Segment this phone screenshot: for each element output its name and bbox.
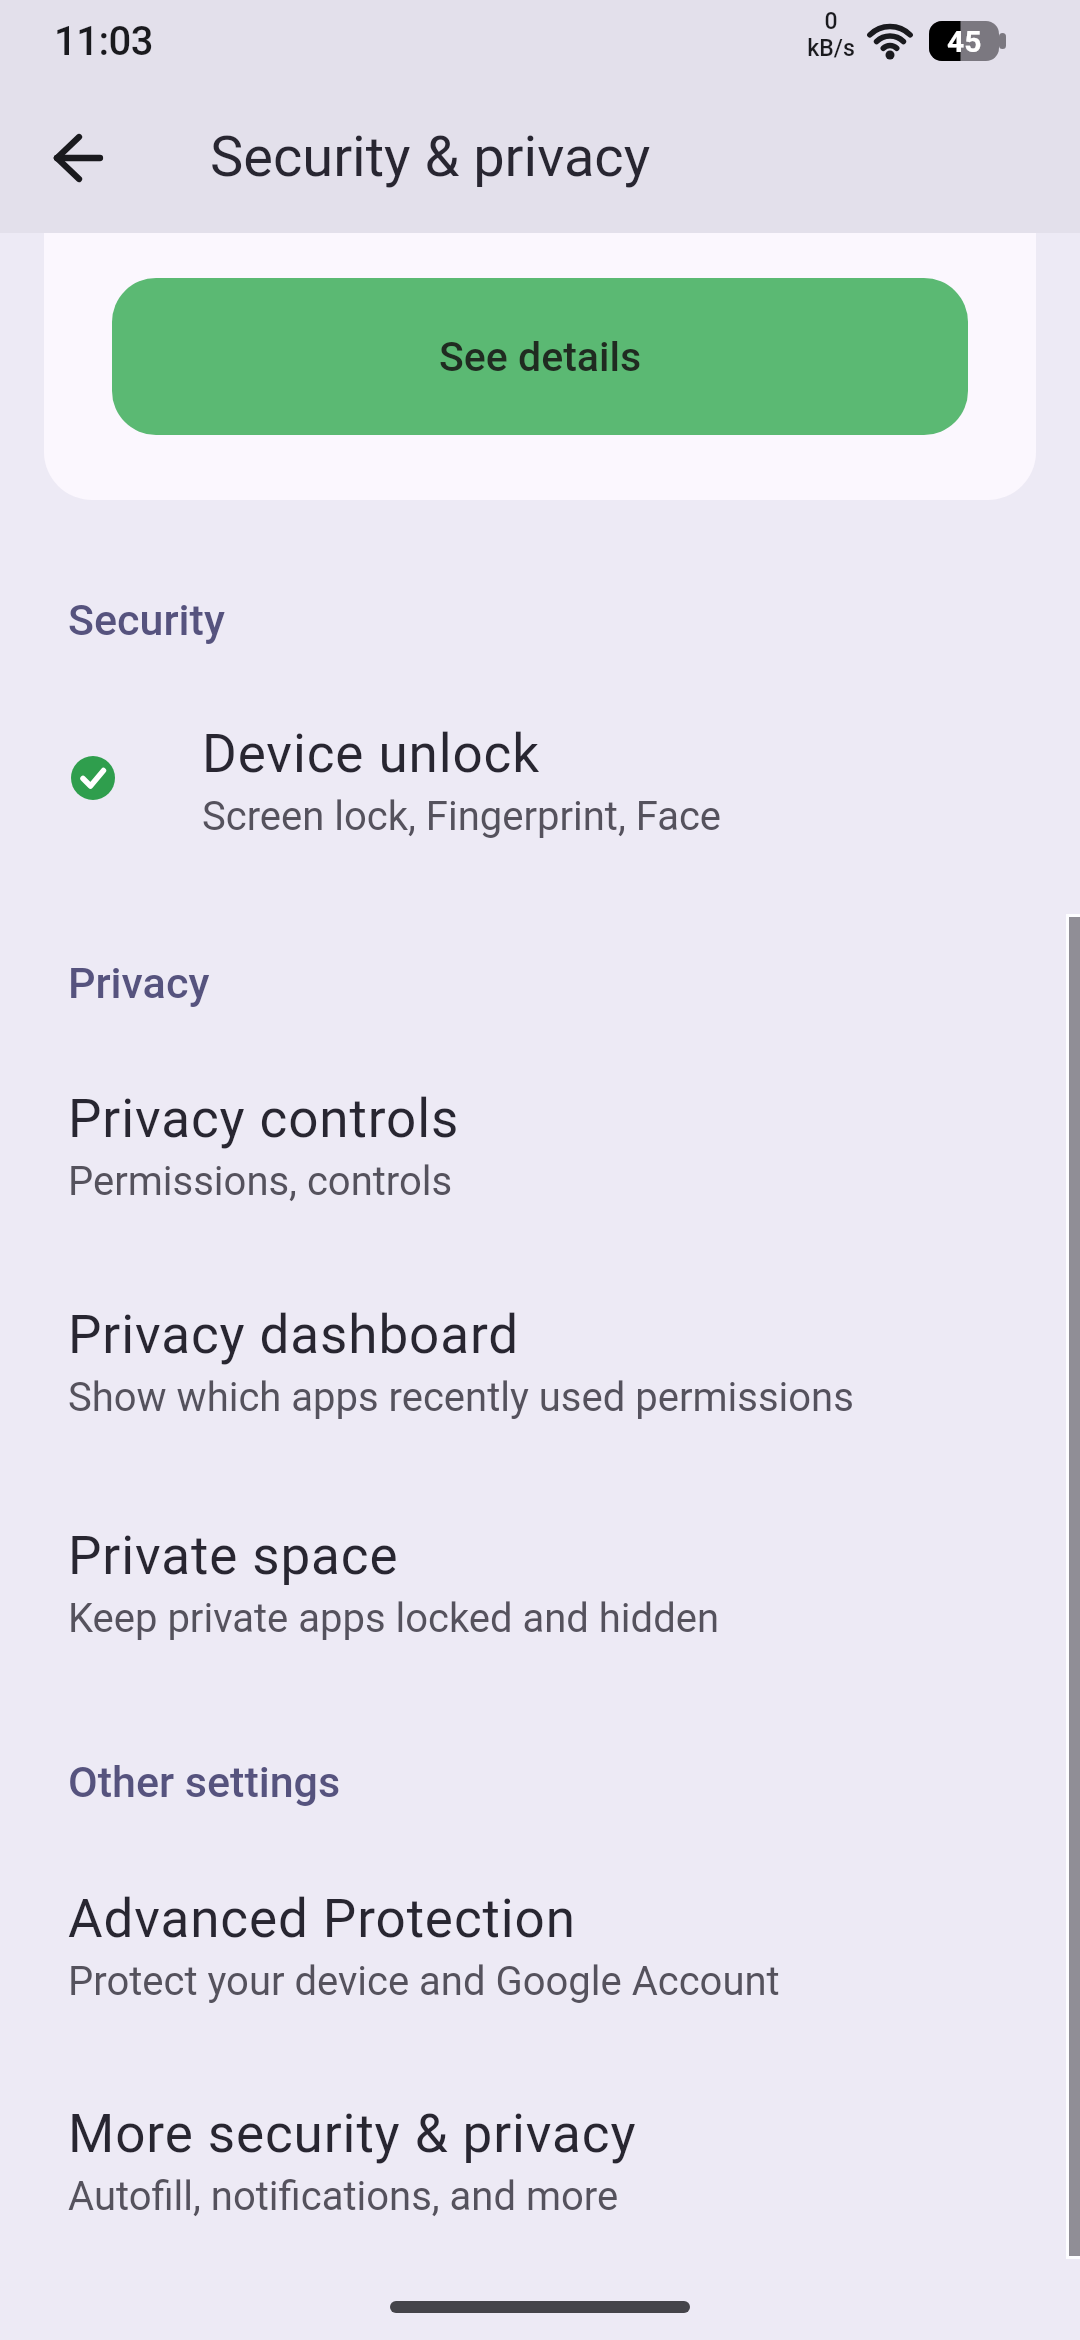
staticText: Security & privacy bbox=[210, 124, 651, 190]
button[interactable]: More security & privacy bbox=[0, 2061, 1080, 2263]
button[interactable] bbox=[40, 120, 116, 196]
staticText: Screen lock, Fingerprint, Face bbox=[202, 793, 722, 840]
staticText: Device unlock bbox=[202, 723, 541, 785]
button[interactable]: Privacy dashboard bbox=[0, 1262, 1080, 1464]
button[interactable]: Advanced Protection bbox=[0, 1846, 1080, 2048]
staticText: Protect your device and Google Account bbox=[68, 1958, 780, 2005]
button[interactable]: Device unlock bbox=[0, 700, 1080, 880]
staticText: Private space bbox=[68, 1525, 399, 1587]
staticText: Security bbox=[68, 595, 225, 645]
staticText: 45 bbox=[947, 24, 982, 59]
staticText: 11:03 bbox=[54, 18, 154, 65]
staticText: Other settings bbox=[68, 1757, 341, 1807]
staticText: Privacy controls bbox=[68, 1088, 460, 1150]
staticText: Advanced Protection bbox=[68, 1888, 576, 1950]
staticText: More security & privacy bbox=[68, 2103, 637, 2165]
staticText: Autofill, notifications, and more bbox=[68, 2173, 619, 2220]
staticText: Privacy dashboard bbox=[68, 1304, 520, 1366]
staticText: Show which apps recently used permission… bbox=[68, 1374, 854, 1421]
button[interactable]: Privacy controls bbox=[0, 1046, 1080, 1248]
staticText: Permissions, controls bbox=[68, 1158, 453, 1205]
staticText: 0 kB/s bbox=[807, 8, 855, 61]
staticText: Keep private apps locked and hidden bbox=[68, 1595, 719, 1642]
button[interactable]: Private space bbox=[0, 1483, 1080, 1685]
button[interactable]: See details bbox=[112, 278, 968, 435]
staticText: Privacy bbox=[68, 958, 210, 1008]
staticText: See details bbox=[439, 333, 642, 381]
